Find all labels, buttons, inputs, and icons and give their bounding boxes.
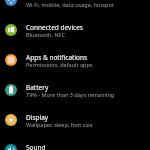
button[interactable]: Battery <box>0 76 150 106</box>
button[interactable]: Connected devices <box>0 16 150 46</box>
staticText: Apps & notifications <box>26 53 88 62</box>
staticText: Battery <box>26 83 49 92</box>
button[interactable]: Apps and notifications <box>0 46 150 76</box>
staticText: Wi-Fi, mobile, data usage, hotspot <box>26 1 114 8</box>
staticText: Bluetooth, NFC <box>26 31 65 38</box>
staticText: Permissions, default apps <box>26 61 93 68</box>
button[interactable]: Network and internet <box>0 0 150 16</box>
staticText: Display <box>26 113 49 122</box>
staticText: Connected devices <box>26 23 83 32</box>
staticText: Sound <box>26 143 46 150</box>
staticText: 79% - More than 3 days remaining <box>26 91 115 98</box>
button[interactable]: Display <box>0 106 150 136</box>
button[interactable]: Sound <box>0 136 150 150</box>
staticText: Wallpaper, sleep, font size <box>26 121 93 128</box>
